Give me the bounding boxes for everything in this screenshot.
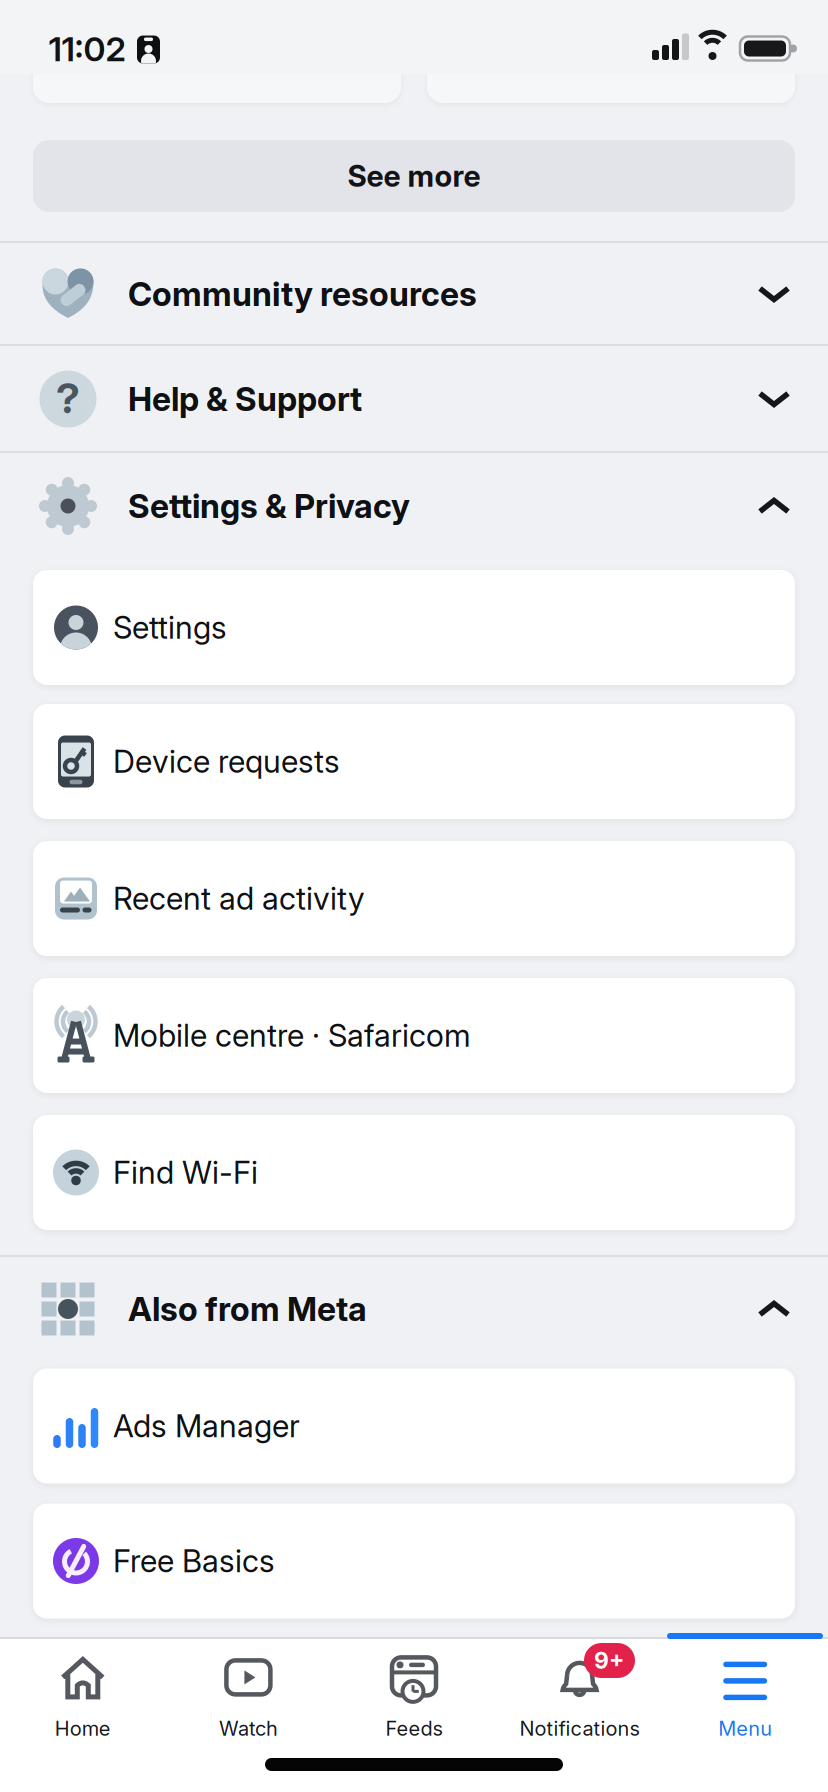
staticText: Ads Manager <box>113 1407 300 1445</box>
button[interactable]: Home <box>0 1638 165 1758</box>
staticText: 11:02 <box>48 28 125 69</box>
button[interactable]: Device requests <box>33 704 795 819</box>
button[interactable]: Settings <box>33 570 795 685</box>
staticText: Free Basics <box>113 1542 275 1580</box>
button[interactable]: Ads Manager <box>33 1368 795 1483</box>
button[interactable]: Community resources <box>0 242 828 345</box>
staticText: Find Wi-Fi <box>113 1154 258 1191</box>
button[interactable]: Notifications <box>497 1638 662 1758</box>
staticText: Home <box>55 1716 111 1741</box>
button[interactable]: Recent ad activity <box>33 841 795 956</box>
staticText: Notifications <box>520 1716 640 1741</box>
staticText: Also from Meta <box>128 1289 367 1329</box>
button[interactable]: Feeds <box>331 1638 496 1758</box>
staticText: Device requests <box>113 743 340 780</box>
staticText: Menu <box>718 1716 772 1741</box>
staticText: Settings <box>113 609 227 646</box>
button[interactable]: Settings & Privacy <box>0 454 828 557</box>
button[interactable]: Free Basics <box>33 1503 795 1618</box>
staticText: Mobile centre · Safaricom <box>113 1017 471 1054</box>
staticText: See more <box>347 158 480 194</box>
button[interactable]: Find Wi-Fi <box>33 1115 795 1230</box>
staticText: Community resources <box>128 274 477 314</box>
button[interactable]: Menu <box>663 1638 828 1758</box>
button[interactable]: Watch <box>166 1638 331 1758</box>
button[interactable]: See more <box>33 140 795 212</box>
staticText: 9+ <box>594 1647 625 1674</box>
staticText: Feeds <box>385 1716 442 1741</box>
staticText: Recent ad activity <box>113 880 365 917</box>
button[interactable]: Also from Meta <box>0 1257 828 1360</box>
button[interactable]: Mobile centre · Safaricom <box>33 978 795 1093</box>
staticText: ? <box>56 373 80 423</box>
staticText: Help & Support <box>128 379 362 419</box>
staticText: Settings & Privacy <box>128 486 410 526</box>
button[interactable]: ? <box>0 347 828 450</box>
staticText: Watch <box>219 1716 278 1741</box>
